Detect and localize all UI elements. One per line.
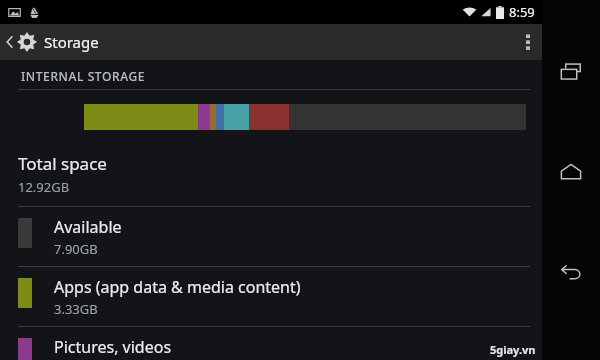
staticText: 3.33GB: [54, 300, 98, 318]
button[interactable]: Apps (app data & media content): [0, 267, 542, 327]
staticText: Apps (app data & media content): [54, 276, 301, 298]
button[interactable]: More options: [514, 27, 542, 57]
button[interactable]: Recents: [549, 50, 593, 94]
staticText: Pictures, videos: [54, 336, 172, 358]
staticText: Storage: [44, 32, 99, 52]
staticText: 7.90GB: [54, 240, 98, 258]
button[interactable]: Available: [0, 207, 542, 267]
button[interactable]: Navigate up: [0, 27, 107, 57]
staticText: Total space: [18, 152, 107, 175]
staticText: 5giay.vn: [490, 342, 536, 357]
staticText: INTERNAL STORAGE: [21, 68, 145, 84]
button[interactable]: Total space: [0, 142, 542, 207]
staticText: 12.92GB: [18, 178, 70, 196]
button[interactable]: Back: [549, 250, 593, 294]
staticText: 8:59: [509, 3, 535, 21]
button[interactable]: Pictures, videos: [0, 327, 542, 360]
button[interactable]: Home: [549, 150, 593, 194]
staticText: Available: [54, 216, 122, 238]
